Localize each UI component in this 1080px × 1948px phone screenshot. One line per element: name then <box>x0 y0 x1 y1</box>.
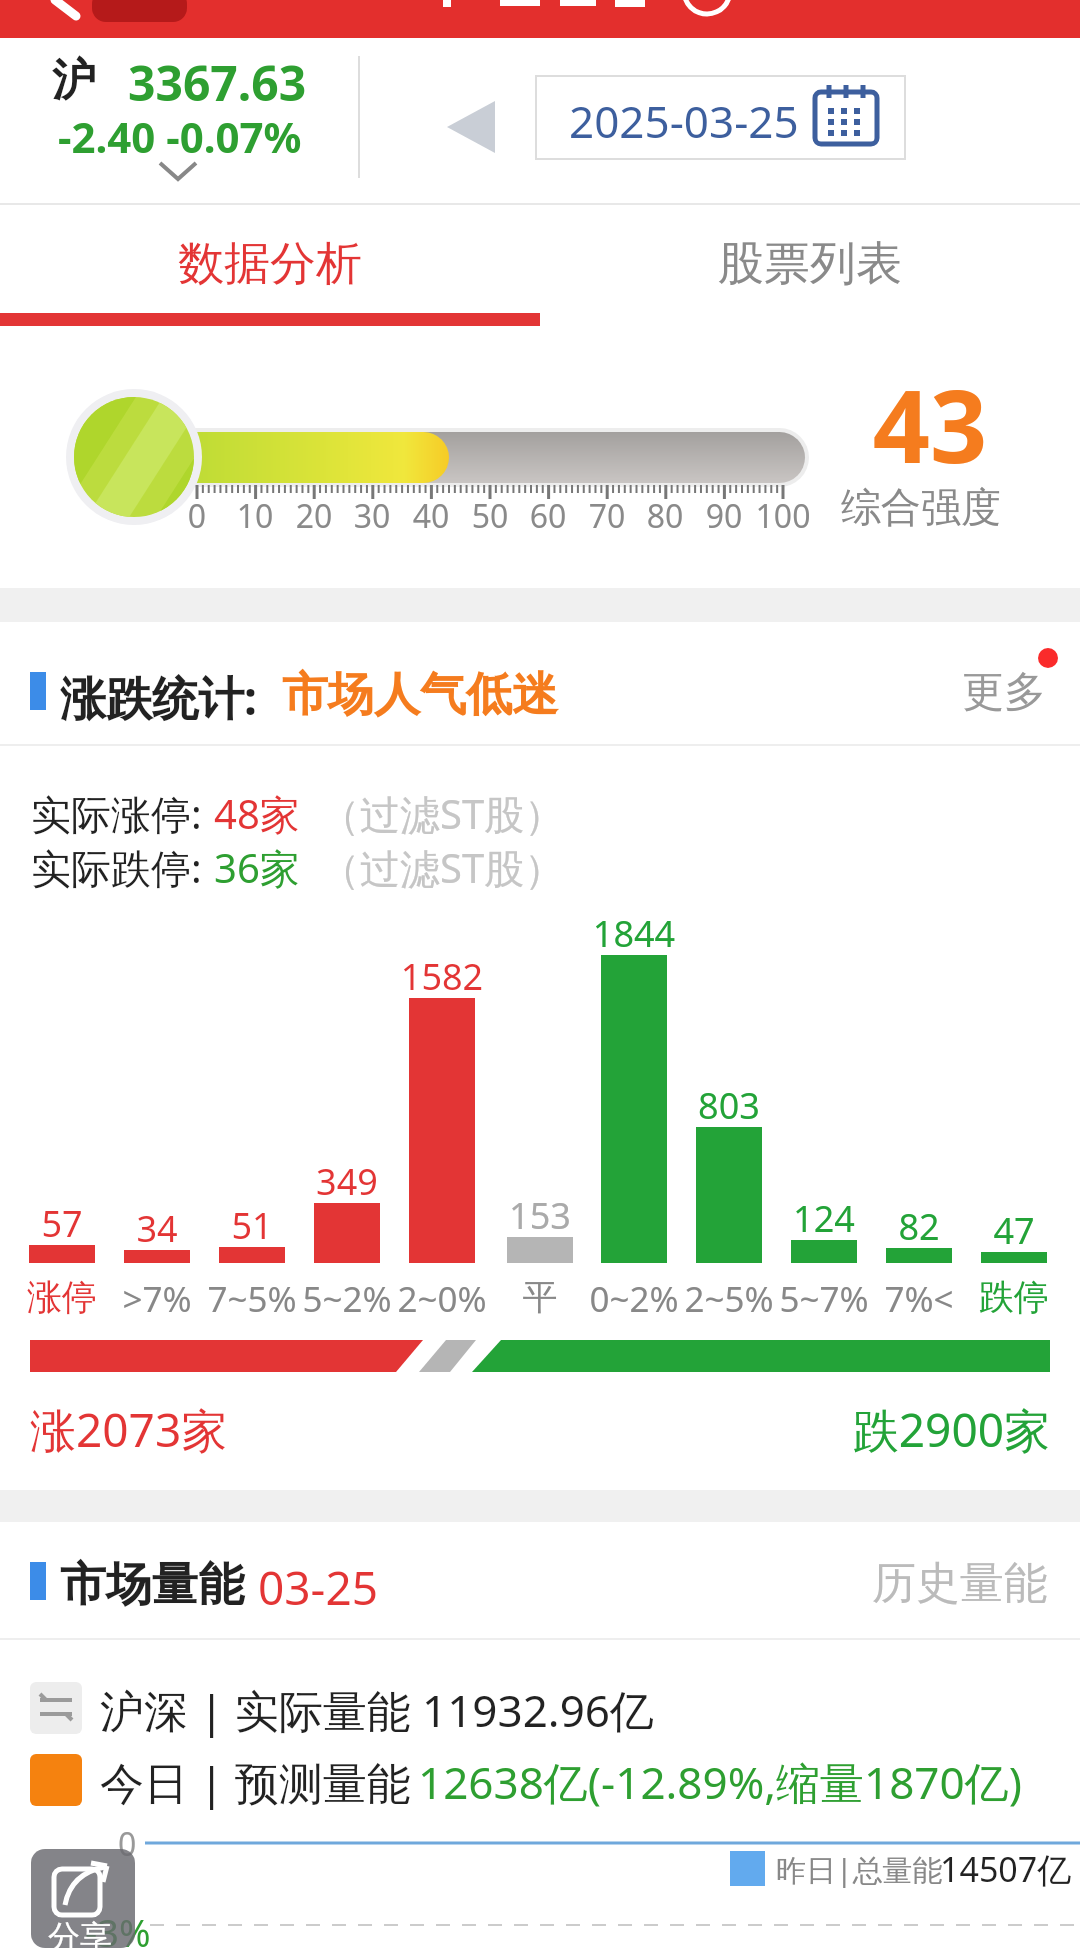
staticText: 0 <box>157 494 237 538</box>
staticText: 70 <box>567 494 647 538</box>
staticText: 0 <box>118 1822 137 1866</box>
staticText: （过滤ST股） <box>320 840 565 895</box>
staticText: 涨停 <box>2 1275 122 1319</box>
button[interactable]: 2025-03-25 <box>535 75 906 160</box>
staticText: 市场量能 <box>60 1556 244 1614</box>
staticText: -3% <box>85 1906 151 1948</box>
staticText: 更多 <box>962 666 1046 719</box>
staticText: 40 <box>391 494 471 538</box>
staticText: 跌停 <box>954 1275 1074 1319</box>
staticText: 100 <box>743 494 823 538</box>
staticText: 82 <box>859 1202 979 1251</box>
staticText: 03-25 <box>258 1556 379 1619</box>
staticText: 分享 <box>48 1917 112 1948</box>
staticText: 48家 <box>214 786 300 841</box>
button[interactable]: 更多 <box>940 652 1060 722</box>
staticText: 43 <box>840 356 1020 492</box>
button[interactable]: 历史量能 <box>850 1542 1060 1612</box>
staticText: 沪 <box>52 53 96 108</box>
staticText: 10 <box>215 494 295 538</box>
staticText: 14507亿 <box>940 1846 1072 1892</box>
staticText: 51 <box>192 1201 312 1250</box>
staticText: 124 <box>764 1194 884 1243</box>
staticText: 5~7% <box>764 1275 884 1323</box>
staticText: 平 <box>480 1275 600 1319</box>
staticText: 153 <box>480 1191 600 1240</box>
staticText: 90 <box>684 494 764 538</box>
staticText: 5~2% <box>287 1275 407 1323</box>
button[interactable] <box>0 205 540 330</box>
staticText: 历史量能 <box>872 1556 1048 1611</box>
staticText: 2025-03-25 <box>569 91 799 151</box>
staticText: 0~2% <box>574 1275 694 1323</box>
staticText: 57 <box>2 1199 122 1248</box>
staticText: 34 <box>97 1204 217 1253</box>
staticText: 实际跌停: <box>31 840 202 895</box>
staticText: 11932.96亿 <box>422 1680 654 1740</box>
button[interactable] <box>540 205 1080 330</box>
staticText: -2.40 -0.07% <box>58 108 302 165</box>
staticText: 跌2900家 <box>830 1398 1050 1461</box>
staticText: 数据分析 <box>178 235 362 293</box>
button[interactable] <box>0 0 200 38</box>
staticText: 涨2073家 <box>30 1398 228 1461</box>
staticText: 7~5% <box>192 1275 312 1323</box>
staticText: （过滤ST股） <box>320 786 565 841</box>
staticText: 2~5% <box>669 1275 789 1323</box>
staticText: 2~0% <box>382 1275 502 1323</box>
button[interactable]: 分享 <box>31 1849 135 1948</box>
staticText: 20 <box>274 494 354 538</box>
staticText: 实际涨停: <box>31 786 202 841</box>
staticText: 12638亿(-12.89%,缩量1870亿) <box>418 1752 1022 1812</box>
staticText: 47 <box>954 1206 1074 1255</box>
staticText: 349 <box>287 1157 407 1206</box>
staticText: 沪深 | 实际量能 <box>100 1680 412 1740</box>
staticText: 股票列表 <box>718 235 902 293</box>
staticText: 今日 | 预测量能 <box>100 1752 412 1812</box>
staticText: 80 <box>625 494 705 538</box>
staticText: 涨跌统计: <box>60 666 257 729</box>
staticText: 803 <box>669 1081 789 1130</box>
staticText: 1844 <box>574 909 694 958</box>
staticText: 30 <box>332 494 412 538</box>
staticText: 36家 <box>214 840 300 895</box>
staticText: >7% <box>97 1275 217 1323</box>
staticText: 60 <box>508 494 588 538</box>
staticText: 市场人气低迷 <box>282 666 558 724</box>
staticText: 昨日|总量能 <box>776 1849 943 1890</box>
staticText: 1582 <box>382 952 502 1001</box>
staticText: 50 <box>450 494 530 538</box>
staticText: 3367.63 <box>128 50 307 115</box>
staticText: 7%< <box>859 1275 979 1323</box>
staticText: 综合强度 <box>841 482 1001 532</box>
